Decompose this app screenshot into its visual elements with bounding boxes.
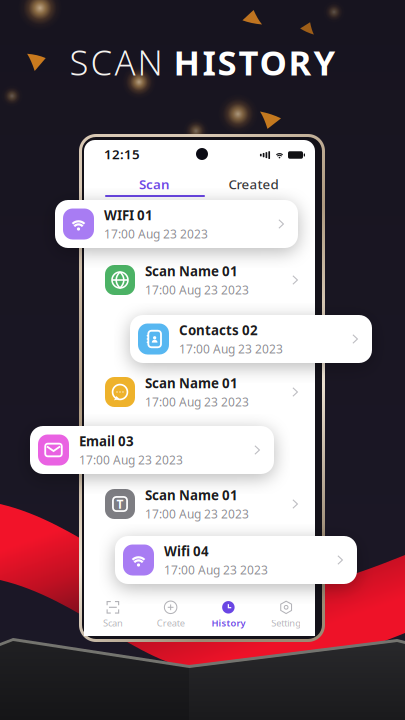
button[interactable]: Scan	[105, 174, 204, 194]
button[interactable]: Wifi 04	[115, 536, 357, 584]
button[interactable]: Scan Name 01	[84, 256, 315, 304]
button[interactable]: Contacts 02	[130, 315, 372, 363]
staticText: 17:00 Aug 23 2023	[79, 452, 183, 468]
staticText: WIFI 01	[104, 206, 153, 224]
button[interactable]: WIFI 01	[55, 200, 298, 248]
staticText: Create	[157, 617, 185, 629]
staticText: Setting	[271, 617, 301, 629]
button[interactable]: Create	[142, 595, 200, 635]
button[interactable]: T	[84, 480, 315, 528]
staticText: 17:00 Aug 23 2023	[179, 341, 283, 357]
button[interactable]: Scan Name 01	[84, 368, 315, 416]
staticText: Created	[228, 175, 278, 193]
staticText: Scan	[139, 175, 170, 193]
staticText: T	[116, 496, 123, 512]
button[interactable]: Created	[204, 174, 303, 194]
staticText: Email 03	[79, 432, 134, 450]
staticText: Contacts 02	[179, 321, 258, 339]
staticText: Scan	[103, 617, 123, 629]
staticText: 17:00 Aug 23 2023	[145, 394, 249, 410]
staticText: Scan Name 01	[145, 486, 238, 504]
staticText: SCAN	[69, 39, 173, 85]
staticText: Scan Name 01	[145, 374, 238, 392]
staticText: Scan Name 01	[145, 262, 238, 280]
button[interactable]: History	[199, 595, 257, 635]
staticText: 17:00 Aug 23 2023	[145, 506, 249, 522]
button[interactable]: Setting	[257, 595, 315, 635]
staticText: HISTORY	[173, 39, 335, 85]
staticText: 12:15	[104, 145, 140, 163]
staticText: History	[211, 617, 245, 629]
staticText: 17:00 Aug 23 2023	[164, 562, 268, 578]
staticText: 17:00 Aug 23 2023	[104, 226, 208, 242]
button[interactable]: Scan	[84, 595, 142, 635]
staticText: 17:00 Aug 23 2023	[145, 282, 249, 298]
button[interactable]: Email 03	[30, 426, 274, 474]
staticText: Wifi 04	[164, 542, 209, 560]
